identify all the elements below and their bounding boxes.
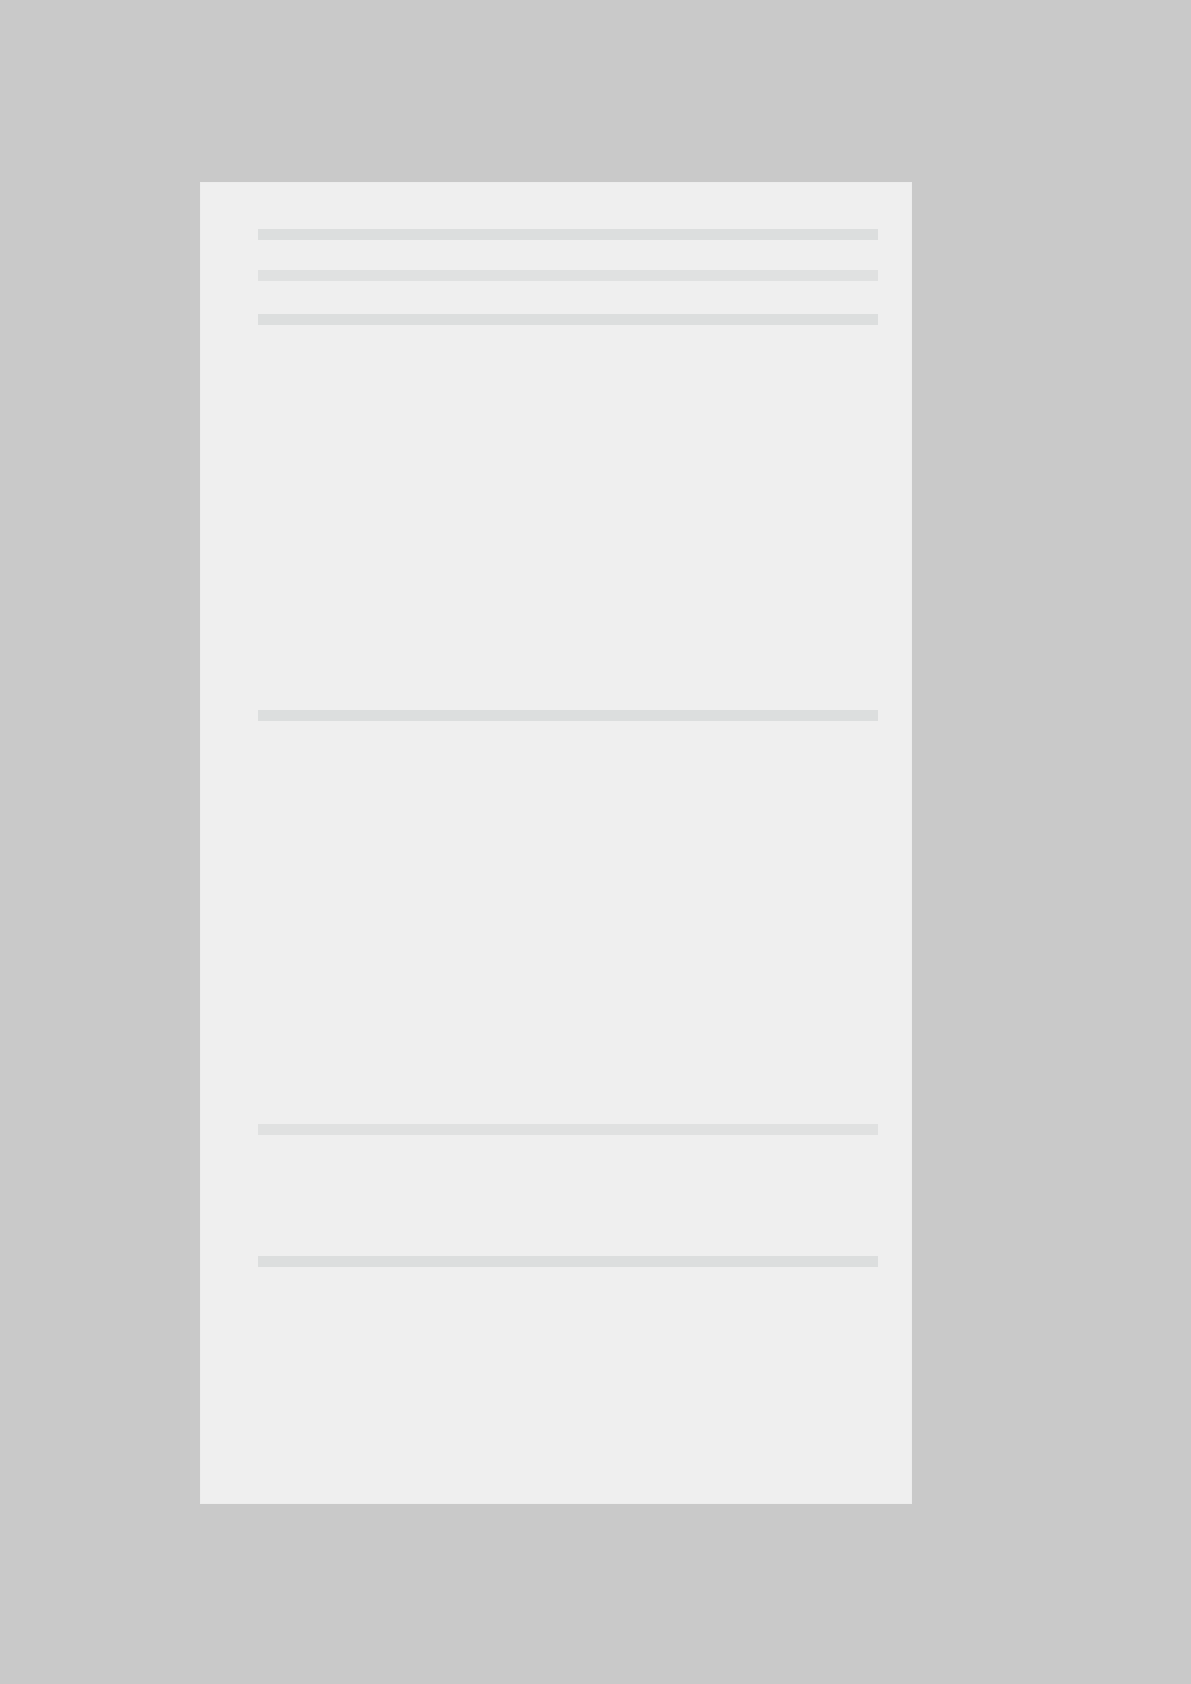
- button[interactable]: Document content: [201, 183, 911, 1503]
